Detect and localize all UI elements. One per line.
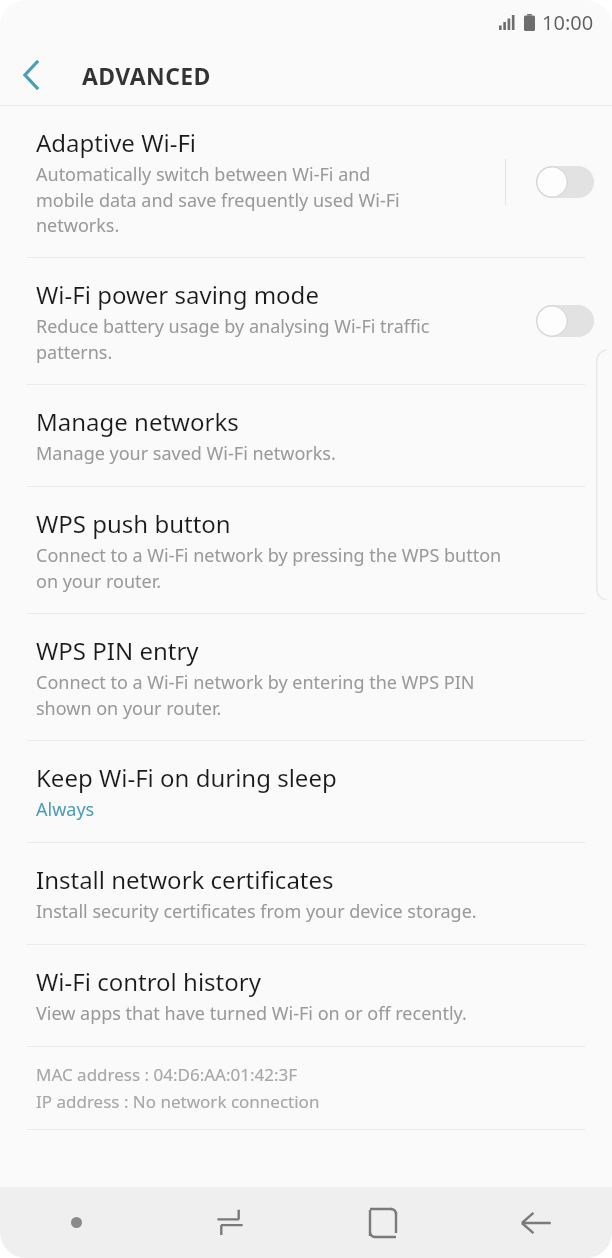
staticText: Reduce battery usage by analysing Wi-Fi … bbox=[36, 314, 430, 364]
staticText: WPS push button bbox=[36, 507, 231, 540]
button[interactable]: Toggle Wi-Fi power saving mode bbox=[532, 299, 598, 343]
button[interactable]: Wi-Fi control history bbox=[0, 945, 612, 1046]
staticText: Install network certificates bbox=[36, 863, 334, 896]
staticText: 10:00 bbox=[542, 9, 594, 36]
staticText: Always bbox=[36, 797, 95, 822]
staticText: Keep Wi-Fi on during sleep bbox=[36, 761, 337, 794]
staticText: Adaptive Wi-Fi bbox=[36, 126, 197, 159]
staticText: MAC address : 04:D6:AA:01:42:3F bbox=[36, 1063, 298, 1086]
button[interactable]: Toggle Adaptive Wi-Fi bbox=[532, 160, 598, 204]
button[interactable]: Wi-Fi power saving mode bbox=[0, 258, 612, 384]
button[interactable]: WPS PIN entry bbox=[0, 614, 612, 740]
button[interactable]: Adaptive Wi-Fi bbox=[0, 106, 612, 257]
staticText: Manage networks bbox=[36, 405, 239, 438]
staticText: Manage your saved Wi-Fi networks. bbox=[36, 441, 336, 466]
button[interactable]: Install network certificates bbox=[0, 843, 612, 944]
staticText: Wi-Fi control history bbox=[36, 965, 261, 998]
staticText: View apps that have turned Wi-Fi on or o… bbox=[36, 1001, 467, 1026]
staticText: Install security certificates from your … bbox=[36, 899, 477, 924]
button[interactable]: Back bbox=[0, 44, 62, 106]
staticText: Automatically switch between Wi-Fi and m… bbox=[36, 162, 400, 237]
staticText: Wi-Fi power saving mode bbox=[36, 278, 319, 311]
button[interactable]: Keep Wi-Fi on during sleep bbox=[0, 741, 612, 842]
button[interactable]: Back bbox=[459, 1187, 612, 1258]
button[interactable]: Home bbox=[306, 1187, 459, 1258]
button[interactable]: Recent apps bbox=[153, 1187, 306, 1258]
staticText: IP address : No network connection bbox=[36, 1090, 320, 1113]
staticText: Connect to a Wi-Fi network by pressing t… bbox=[36, 543, 502, 593]
button[interactable]: Hide navigation bar bbox=[0, 1187, 153, 1258]
staticText: Connect to a Wi-Fi network by entering t… bbox=[36, 670, 475, 720]
button[interactable]: WPS push button bbox=[0, 487, 612, 613]
staticText: ADVANCED bbox=[82, 60, 211, 91]
staticText: WPS PIN entry bbox=[36, 634, 199, 667]
button[interactable]: Manage networks bbox=[0, 385, 612, 486]
